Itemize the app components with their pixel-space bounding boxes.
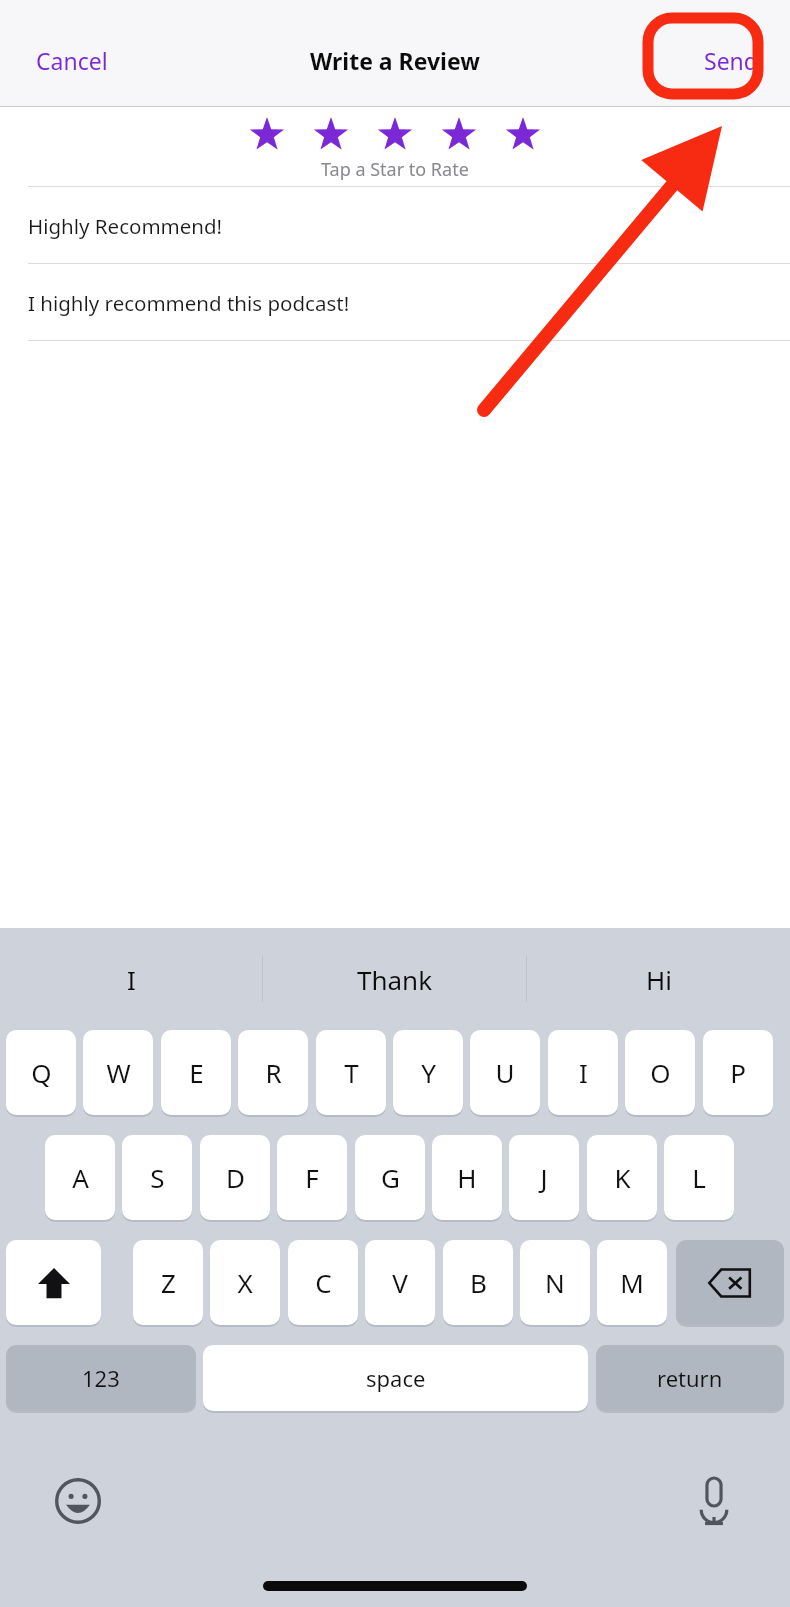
button[interactable] [235,115,299,155]
button[interactable]: K [587,1135,657,1220]
button[interactable]: Highly Recommend! [0,187,790,264]
button[interactable]: R [238,1030,308,1115]
staticText: H [457,1160,477,1195]
button[interactable]: space [203,1345,588,1411]
staticText: Q [31,1055,52,1090]
button[interactable]: E [161,1030,231,1115]
button[interactable]: T [316,1030,386,1115]
staticText: 123 [82,1363,120,1393]
staticText: B [470,1265,487,1300]
staticText: U [495,1055,515,1090]
button[interactable]: Cancel [18,37,126,84]
staticText: Hi [646,962,672,997]
staticText: I [579,1055,588,1090]
button[interactable]: return [596,1345,784,1411]
staticText: V [392,1265,408,1300]
button[interactable]: Dictation [676,1463,752,1539]
button[interactable]: V [365,1240,435,1325]
staticText: M [620,1265,644,1300]
button[interactable]: Y [393,1030,463,1115]
button[interactable]: C [288,1240,358,1325]
button[interactable]: Q [6,1030,76,1115]
button[interactable]: J [509,1135,579,1220]
staticText: Cancel [36,45,108,76]
button[interactable] [491,115,555,155]
staticText: A [72,1160,89,1195]
button[interactable]: I [548,1030,618,1115]
button[interactable]: Thank [263,928,526,1030]
button[interactable]: F [277,1135,347,1220]
staticText: O [650,1055,671,1090]
staticText: J [540,1160,548,1195]
staticText: S [150,1160,165,1195]
button[interactable]: Delete [676,1240,784,1325]
button[interactable]: P [703,1030,773,1115]
staticText: D [226,1160,245,1195]
staticText: N [545,1265,565,1300]
staticText: Z [161,1265,176,1300]
button[interactable]: Hi [527,928,790,1030]
button[interactable]: L [664,1135,734,1220]
button[interactable]: I highly recommend this podcast! [0,264,790,341]
staticText: Highly Recommend! [28,212,223,240]
button[interactable]: Z [133,1240,203,1325]
button[interactable]: I [0,928,262,1030]
button[interactable] [299,115,363,155]
button[interactable]: S [122,1135,192,1220]
staticText: R [265,1055,282,1090]
staticText: X [237,1265,253,1300]
button[interactable]: G [355,1135,425,1220]
button[interactable]: B [443,1240,513,1325]
staticText: W [106,1055,131,1090]
staticText: P [730,1055,746,1090]
button[interactable]: M [597,1240,667,1325]
button[interactable]: O [625,1030,695,1115]
button[interactable]: Emoji [40,1463,116,1539]
button[interactable]: U [470,1030,540,1115]
button[interactable]: A [45,1135,115,1220]
staticText: Send [704,45,758,76]
button[interactable]: 123 [6,1345,196,1411]
staticText: K [614,1160,631,1195]
button[interactable]: N [520,1240,590,1325]
staticText: I [127,962,136,997]
staticText: return [657,1363,723,1393]
button[interactable]: D [200,1135,270,1220]
staticText: F [305,1160,319,1195]
button[interactable]: X [210,1240,280,1325]
staticText: G [381,1160,400,1195]
staticText: Tap a Star to Rate [321,157,469,182]
staticText: I highly recommend this podcast! [28,289,350,317]
staticText: Thank [357,962,433,997]
button[interactable]: Shift [6,1240,101,1325]
button[interactable]: H [432,1135,502,1220]
button[interactable] [427,115,491,155]
staticText: L [692,1160,706,1195]
staticText: E [189,1055,204,1090]
button[interactable] [363,115,427,155]
staticText: T [344,1055,359,1090]
staticText: Y [421,1055,436,1090]
staticText: Write a Review [310,45,480,76]
button[interactable]: W [83,1030,153,1115]
staticText: space [366,1363,426,1393]
staticText: C [315,1265,332,1300]
button[interactable]: Send [690,37,772,84]
